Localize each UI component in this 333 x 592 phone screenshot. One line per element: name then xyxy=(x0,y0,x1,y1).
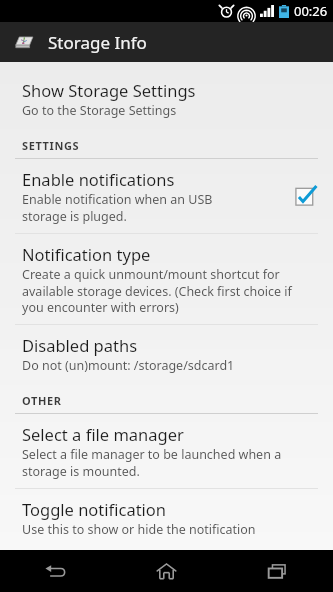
staticText: SETTINGS xyxy=(22,138,80,153)
staticText: Disabled paths xyxy=(22,334,138,356)
staticText: Enable notification when an USB storage … xyxy=(22,191,213,224)
button[interactable]: Back xyxy=(0,550,111,592)
staticText: Storage Info xyxy=(48,31,147,54)
button[interactable]: Select a file manager xyxy=(0,414,333,488)
button[interactable]: Enable notifications xyxy=(0,159,333,233)
staticText: Create a quick unmount/mount shortcut fo… xyxy=(22,266,292,315)
staticText: Enable notifications xyxy=(22,168,175,190)
staticText: Select a file manager xyxy=(22,423,184,445)
staticText: Use this to show or hide the notificatio… xyxy=(22,521,256,541)
staticText: OTHER xyxy=(22,393,62,408)
staticText: Do not (un)mount: /storage/sdcard1 xyxy=(22,357,235,374)
staticText: Show Storage Settings xyxy=(22,79,196,101)
button[interactable]: Enable notifications checkbox xyxy=(293,183,319,209)
button[interactable]: Disabled paths xyxy=(0,325,333,383)
staticText: Go to the Storage Settings xyxy=(22,102,177,119)
staticText: Toggle notification xyxy=(22,498,167,520)
button[interactable]: Recent apps xyxy=(222,550,333,592)
button[interactable]: Home xyxy=(111,550,222,592)
staticText: 00:26 xyxy=(294,2,328,20)
button[interactable]: Show Storage Settings xyxy=(0,70,333,128)
staticText: Select a file manager to be launched whe… xyxy=(22,446,282,479)
button[interactable]: Toggle notification xyxy=(0,489,333,550)
button[interactable]: Notification type xyxy=(0,234,333,324)
staticText: Notification type xyxy=(22,243,151,265)
